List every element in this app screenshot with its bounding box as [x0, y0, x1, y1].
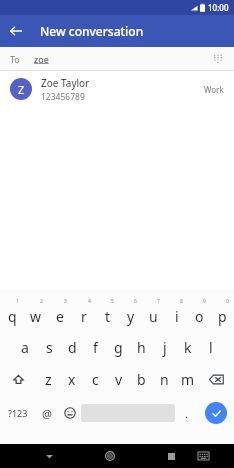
button[interactable]: 2	[24, 297, 48, 331]
button[interactable]: ?123	[0, 395, 35, 431]
staticText: g	[114, 338, 123, 357]
staticText: j	[163, 338, 167, 357]
button[interactable]: 8	[165, 297, 188, 331]
button[interactable]: Back	[0, 15, 32, 47]
button[interactable]: 3	[48, 297, 72, 331]
staticText: a	[21, 338, 29, 357]
staticText: d	[68, 338, 77, 357]
button[interactable]: z	[36, 363, 60, 395]
button[interactable]: 5	[96, 297, 119, 331]
button[interactable]: d	[61, 331, 84, 363]
staticText: 6	[134, 298, 137, 305]
staticText: 8	[180, 298, 183, 305]
button[interactable]: 6	[119, 297, 142, 331]
button[interactable]: Z	[0, 71, 234, 107]
button[interactable]: v	[107, 363, 130, 395]
button[interactable]: m	[176, 363, 199, 395]
button[interactable]: c	[84, 363, 107, 395]
button[interactable]: f	[84, 331, 107, 363]
button[interactable]: 0	[211, 297, 234, 331]
button[interactable]: h	[130, 331, 153, 363]
staticText: i	[175, 307, 179, 326]
staticText: .	[185, 406, 188, 421]
staticText: n	[160, 370, 169, 389]
button[interactable]: s	[37, 331, 61, 363]
button[interactable]: b	[130, 363, 153, 395]
staticText: v	[115, 370, 123, 389]
button[interactable]: 9	[188, 297, 211, 331]
staticText: z	[45, 370, 52, 389]
staticText: Z	[18, 82, 25, 97]
staticText: o	[195, 307, 204, 326]
staticText: x	[68, 370, 76, 389]
button[interactable]: @	[35, 395, 58, 431]
button[interactable]: Send	[198, 395, 234, 431]
button[interactable]: l	[199, 331, 222, 363]
button[interactable]: 4	[72, 297, 96, 331]
staticText: 10:00	[208, 2, 229, 13]
staticText: b	[137, 370, 146, 389]
button[interactable]: .	[175, 395, 198, 431]
staticText: f	[93, 338, 98, 357]
staticText: Zoe Taylor	[41, 76, 90, 90]
button[interactable]: a	[13, 331, 37, 363]
button[interactable]: Switch keyboard	[189, 444, 217, 468]
staticText: y	[127, 307, 135, 326]
staticText: t	[105, 307, 111, 326]
staticText: s	[46, 338, 53, 357]
staticText: New conversation	[40, 23, 144, 39]
button[interactable]: Shift	[0, 363, 36, 395]
button[interactable]: 1	[0, 297, 24, 331]
staticText: To	[10, 53, 20, 65]
button[interactable]: Emoji	[58, 395, 81, 431]
button[interactable]: Dialpad	[206, 47, 230, 71]
staticText: 5	[111, 298, 114, 305]
staticText: ?123	[8, 407, 28, 419]
button[interactable]: Recents	[157, 444, 185, 468]
staticText: 7	[157, 298, 160, 305]
button[interactable]: Back	[35, 444, 63, 468]
staticText: 3	[64, 298, 67, 305]
button[interactable]: 7	[142, 297, 165, 331]
button[interactable]: x	[60, 363, 84, 395]
staticText: h	[137, 338, 146, 357]
staticText: 123456789	[41, 91, 85, 103]
button[interactable]: g	[107, 331, 130, 363]
staticText: l	[209, 338, 213, 357]
button[interactable]: k	[176, 331, 199, 363]
staticText: 9	[203, 298, 206, 305]
staticText: u	[149, 307, 158, 326]
staticText: 4	[88, 298, 91, 305]
staticText: k	[184, 338, 192, 357]
button[interactable]: n	[153, 363, 176, 395]
staticText: 1	[16, 298, 19, 305]
staticText: e	[56, 307, 64, 326]
staticText: m	[181, 370, 195, 389]
staticText: 2	[40, 298, 43, 305]
staticText: q	[8, 307, 17, 326]
button[interactable]: Backspace	[199, 363, 234, 395]
staticText: r	[81, 307, 87, 326]
button[interactable]: j	[153, 331, 176, 363]
staticText: c	[92, 370, 99, 389]
staticText: p	[218, 307, 227, 326]
staticText: 0	[226, 298, 229, 305]
staticText: w	[30, 307, 42, 326]
staticText: Work	[204, 84, 224, 95]
staticText: zoe	[34, 53, 49, 65]
button[interactable]: Home	[96, 444, 124, 468]
staticText: @	[42, 406, 52, 421]
